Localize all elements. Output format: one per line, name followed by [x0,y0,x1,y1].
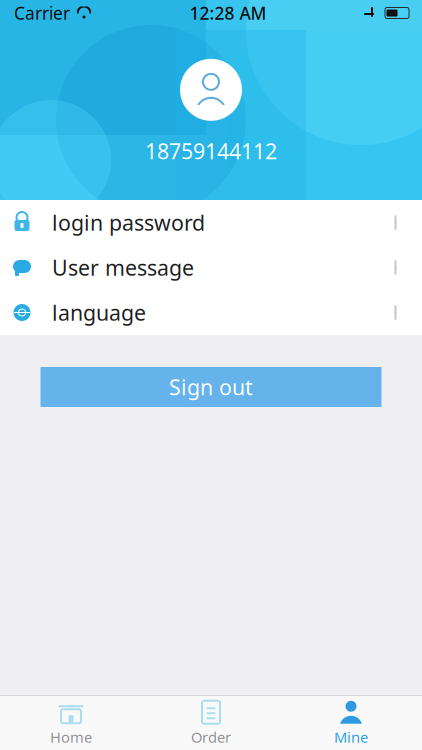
staticText: User message [52,253,194,282]
button[interactable]: Mine [281,696,421,750]
staticText: 12:28 AM [189,1,266,24]
staticText: Sign out [169,373,253,401]
staticText: 18759144112 [145,137,277,165]
button[interactable]: Sign out [40,367,381,407]
button[interactable]: User message [0,245,422,290]
button[interactable]: Home [1,696,141,750]
staticText: Carrier [14,1,70,24]
staticText: Home [50,727,92,747]
button[interactable]: language [0,290,422,335]
button[interactable]: login password [0,200,422,245]
staticText: login password [52,208,205,237]
staticText: language [52,298,146,327]
staticText: Mine [334,727,368,747]
staticText: Order [191,727,231,747]
button[interactable]: Profile photo [180,59,242,121]
button[interactable]: Order [141,696,281,750]
